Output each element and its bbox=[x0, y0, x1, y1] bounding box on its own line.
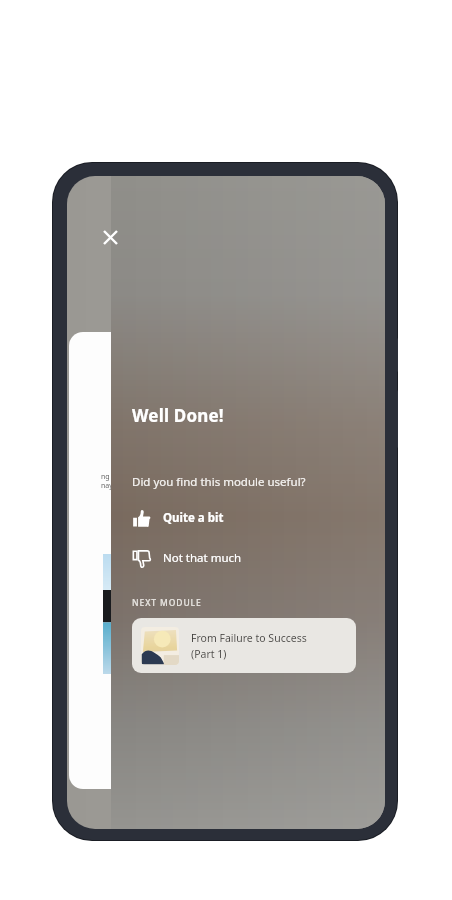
button[interactable]: Not that much bbox=[132, 545, 332, 571]
staticText: Well Done! bbox=[132, 404, 224, 427]
button[interactable]: From Failure to Success bbox=[132, 618, 356, 673]
button[interactable]: Quite a bit bbox=[132, 505, 332, 531]
staticText: Not that much bbox=[163, 550, 242, 566]
staticText: (Part 1) bbox=[191, 647, 227, 661]
staticText: Did you find this module useful? bbox=[132, 474, 306, 490]
staticText: From Failure to Success bbox=[191, 631, 307, 645]
button[interactable]: Close bbox=[94, 221, 126, 253]
staticText: Quite a bit bbox=[163, 510, 224, 526]
staticText: NEXT MODULE bbox=[132, 597, 202, 609]
staticText: ng nay bbox=[101, 472, 113, 490]
